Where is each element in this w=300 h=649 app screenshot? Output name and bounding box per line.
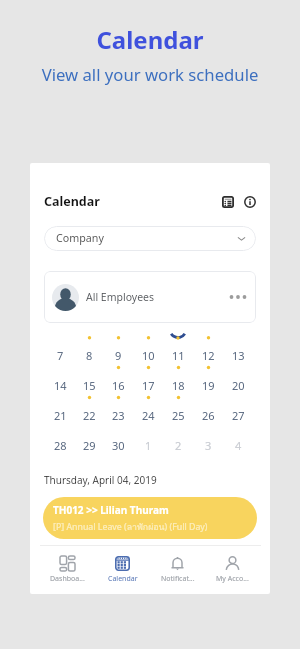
- button[interactable]: Dashboa...: [40, 546, 95, 594]
- button[interactable]: 19: [193, 373, 223, 403]
- button[interactable]: TH012 >> Lilian Thuram: [43, 497, 257, 539]
- staticText: 25: [172, 408, 185, 423]
- staticText: Calendar: [0, 23, 300, 56]
- button[interactable]: My Acco...: [205, 546, 260, 594]
- staticText: 14: [54, 378, 67, 393]
- staticText: 2: [175, 438, 182, 453]
- staticText: 23: [112, 408, 125, 423]
- staticText: Notificat...: [161, 574, 195, 584]
- button[interactable]: 11: [163, 343, 193, 373]
- button[interactable]: List view: [219, 193, 236, 210]
- staticText: 28: [54, 438, 67, 453]
- button[interactable]: 18: [163, 373, 193, 403]
- button[interactable]: 17: [133, 373, 163, 403]
- button[interactable]: 23: [104, 403, 133, 433]
- staticText: 19: [202, 378, 215, 393]
- button[interactable]: 27: [223, 403, 253, 433]
- staticText: 8: [86, 348, 93, 363]
- staticText: 27: [232, 408, 245, 423]
- staticText: [P] Annual Leave (ลาพักผ่อน) (Full Day): [53, 520, 208, 534]
- staticText: 24: [142, 408, 155, 423]
- staticText: 29: [83, 438, 96, 453]
- staticText: 17: [142, 378, 155, 393]
- button[interactable]: 4: [223, 433, 253, 463]
- button[interactable]: 14: [46, 373, 75, 403]
- staticText: 16: [112, 378, 125, 393]
- button[interactable]: 15: [75, 373, 104, 403]
- staticText: 7: [57, 348, 64, 363]
- staticText: 11: [172, 348, 185, 363]
- button[interactable]: Notificat...: [150, 546, 205, 594]
- button[interactable]: 30: [104, 433, 133, 463]
- button[interactable]: Company: [44, 226, 256, 251]
- button[interactable]: 2: [163, 433, 193, 463]
- staticText: 3: [205, 438, 212, 453]
- staticText: Thursday, April 04, 2019: [44, 473, 157, 487]
- button[interactable]: 24: [133, 403, 163, 433]
- staticText: Company: [56, 231, 104, 246]
- button[interactable]: 13: [223, 343, 253, 373]
- staticText: 15: [83, 378, 96, 393]
- staticText: 13: [232, 348, 245, 363]
- button[interactable]: 1: [133, 433, 163, 463]
- staticText: 30: [112, 438, 125, 453]
- staticText: 22: [83, 408, 96, 423]
- staticText: Dashboa...: [50, 574, 85, 584]
- button[interactable]: All Employees: [44, 271, 256, 323]
- button[interactable]: 21: [46, 403, 75, 433]
- button[interactable]: 26: [193, 403, 223, 433]
- staticText: 21: [54, 408, 67, 423]
- staticText: 12: [202, 348, 215, 363]
- staticText: 9: [115, 348, 122, 363]
- button[interactable]: More options: [228, 287, 248, 307]
- staticText: 10: [142, 348, 155, 363]
- button[interactable]: 12: [193, 343, 223, 373]
- button[interactable]: Calendar: [95, 546, 150, 594]
- staticText: My Acco...: [216, 574, 249, 584]
- staticText: 26: [202, 408, 215, 423]
- staticText: Calendar: [44, 193, 100, 210]
- staticText: Calendar: [108, 574, 138, 584]
- button[interactable]: Information: [241, 193, 258, 210]
- button[interactable]: 20: [223, 373, 253, 403]
- button[interactable]: 8: [75, 343, 104, 373]
- staticText: 4: [235, 438, 242, 453]
- button[interactable]: 7: [46, 343, 75, 373]
- button[interactable]: 3: [193, 433, 223, 463]
- button[interactable]: 16: [104, 373, 133, 403]
- staticText: 18: [172, 378, 185, 393]
- button[interactable]: 29: [75, 433, 104, 463]
- staticText: 1: [145, 438, 152, 453]
- staticText: 20: [232, 378, 245, 393]
- button[interactable]: 10: [133, 343, 163, 373]
- button[interactable]: 9: [104, 343, 133, 373]
- button[interactable]: 25: [163, 403, 193, 433]
- button[interactable]: 22: [75, 403, 104, 433]
- staticText: All Employees: [86, 290, 155, 304]
- staticText: View all your work schedule: [0, 63, 300, 86]
- button[interactable]: 28: [46, 433, 75, 463]
- staticText: TH012 >> Lilian Thuram: [53, 503, 169, 517]
